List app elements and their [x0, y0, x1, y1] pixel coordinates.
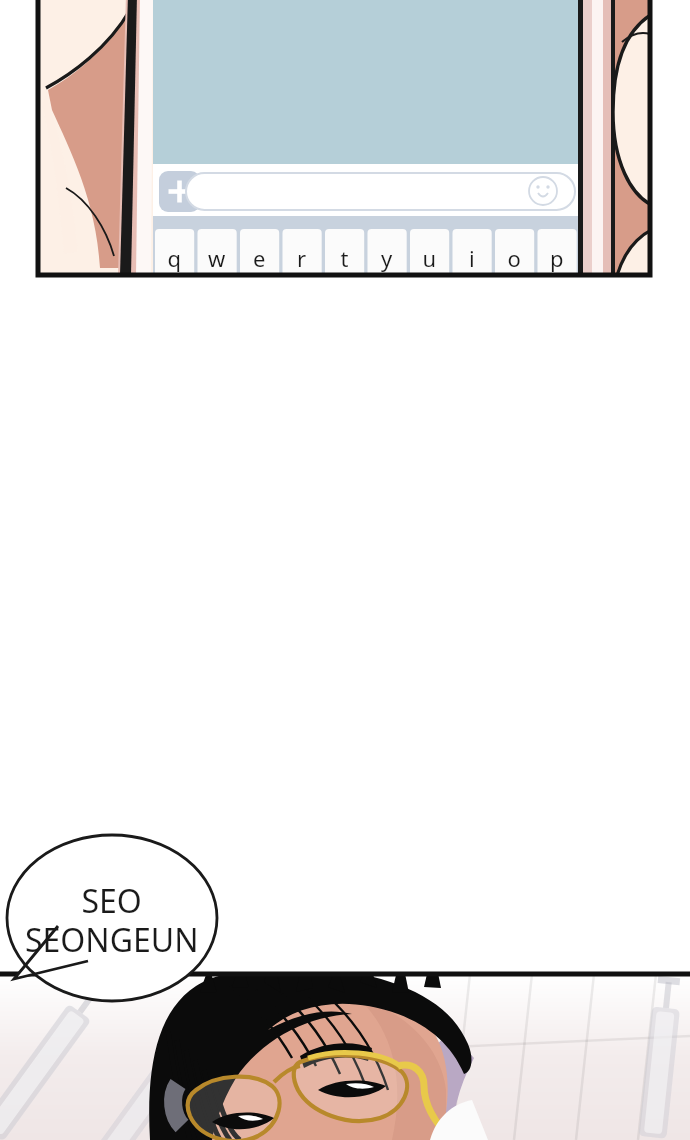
button[interactable]: Webtoon episode panel: [0, 0, 690, 1140]
